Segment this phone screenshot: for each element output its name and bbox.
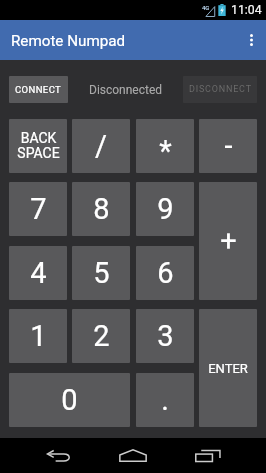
staticText: 6 [157,256,174,290]
button[interactable]: + [199,182,257,300]
button[interactable]: DISCONNECT [183,76,257,103]
button[interactable]: 3 [136,309,194,363]
staticText: 3 [157,319,174,353]
staticText: ENTER [208,361,248,376]
button[interactable]: Recent apps [178,438,238,473]
staticText: + [220,224,237,258]
staticText: DISCONNECT [189,84,252,95]
button[interactable]: 5 [72,246,130,300]
staticText: 9 [157,192,174,226]
button[interactable]: - [199,119,257,173]
button[interactable]: 6 [136,246,194,300]
staticText: 4 [30,256,47,290]
button[interactable]: Home [103,438,163,473]
staticText: * [159,134,172,168]
staticText: . [161,383,169,417]
button[interactable]: 4 [9,246,67,300]
staticText: 11:04 [231,3,262,17]
staticText: 5 [93,256,110,290]
staticText: BACK SPACE [17,130,60,161]
button[interactable]: . [136,373,194,427]
button[interactable]: / [72,119,130,173]
button[interactable]: 0 [9,373,130,427]
button[interactable]: 8 [72,182,130,236]
staticText: CONNECT [15,84,62,95]
staticText: 2 [93,319,110,353]
button[interactable]: 2 [72,309,130,363]
staticText: 0 [61,383,78,417]
button[interactable]: 9 [136,182,194,236]
staticText: / [95,129,107,163]
button[interactable]: 7 [9,182,67,236]
button[interactable]: CONNECT [9,76,68,103]
staticText: Disconnected [89,83,163,97]
button[interactable]: Back [29,438,89,473]
staticText: - [224,129,233,163]
staticText: 7 [30,192,47,226]
staticText: Remote Numpad [11,32,126,50]
staticText: 4G [202,4,210,11]
staticText: 1 [30,319,47,353]
button[interactable]: 1 [9,309,67,363]
staticText: 8 [93,192,110,226]
button[interactable]: BACK SPACE [9,119,67,173]
button[interactable]: * [136,119,194,173]
button[interactable]: More options [236,20,266,60]
button[interactable]: ENTER [199,309,257,427]
